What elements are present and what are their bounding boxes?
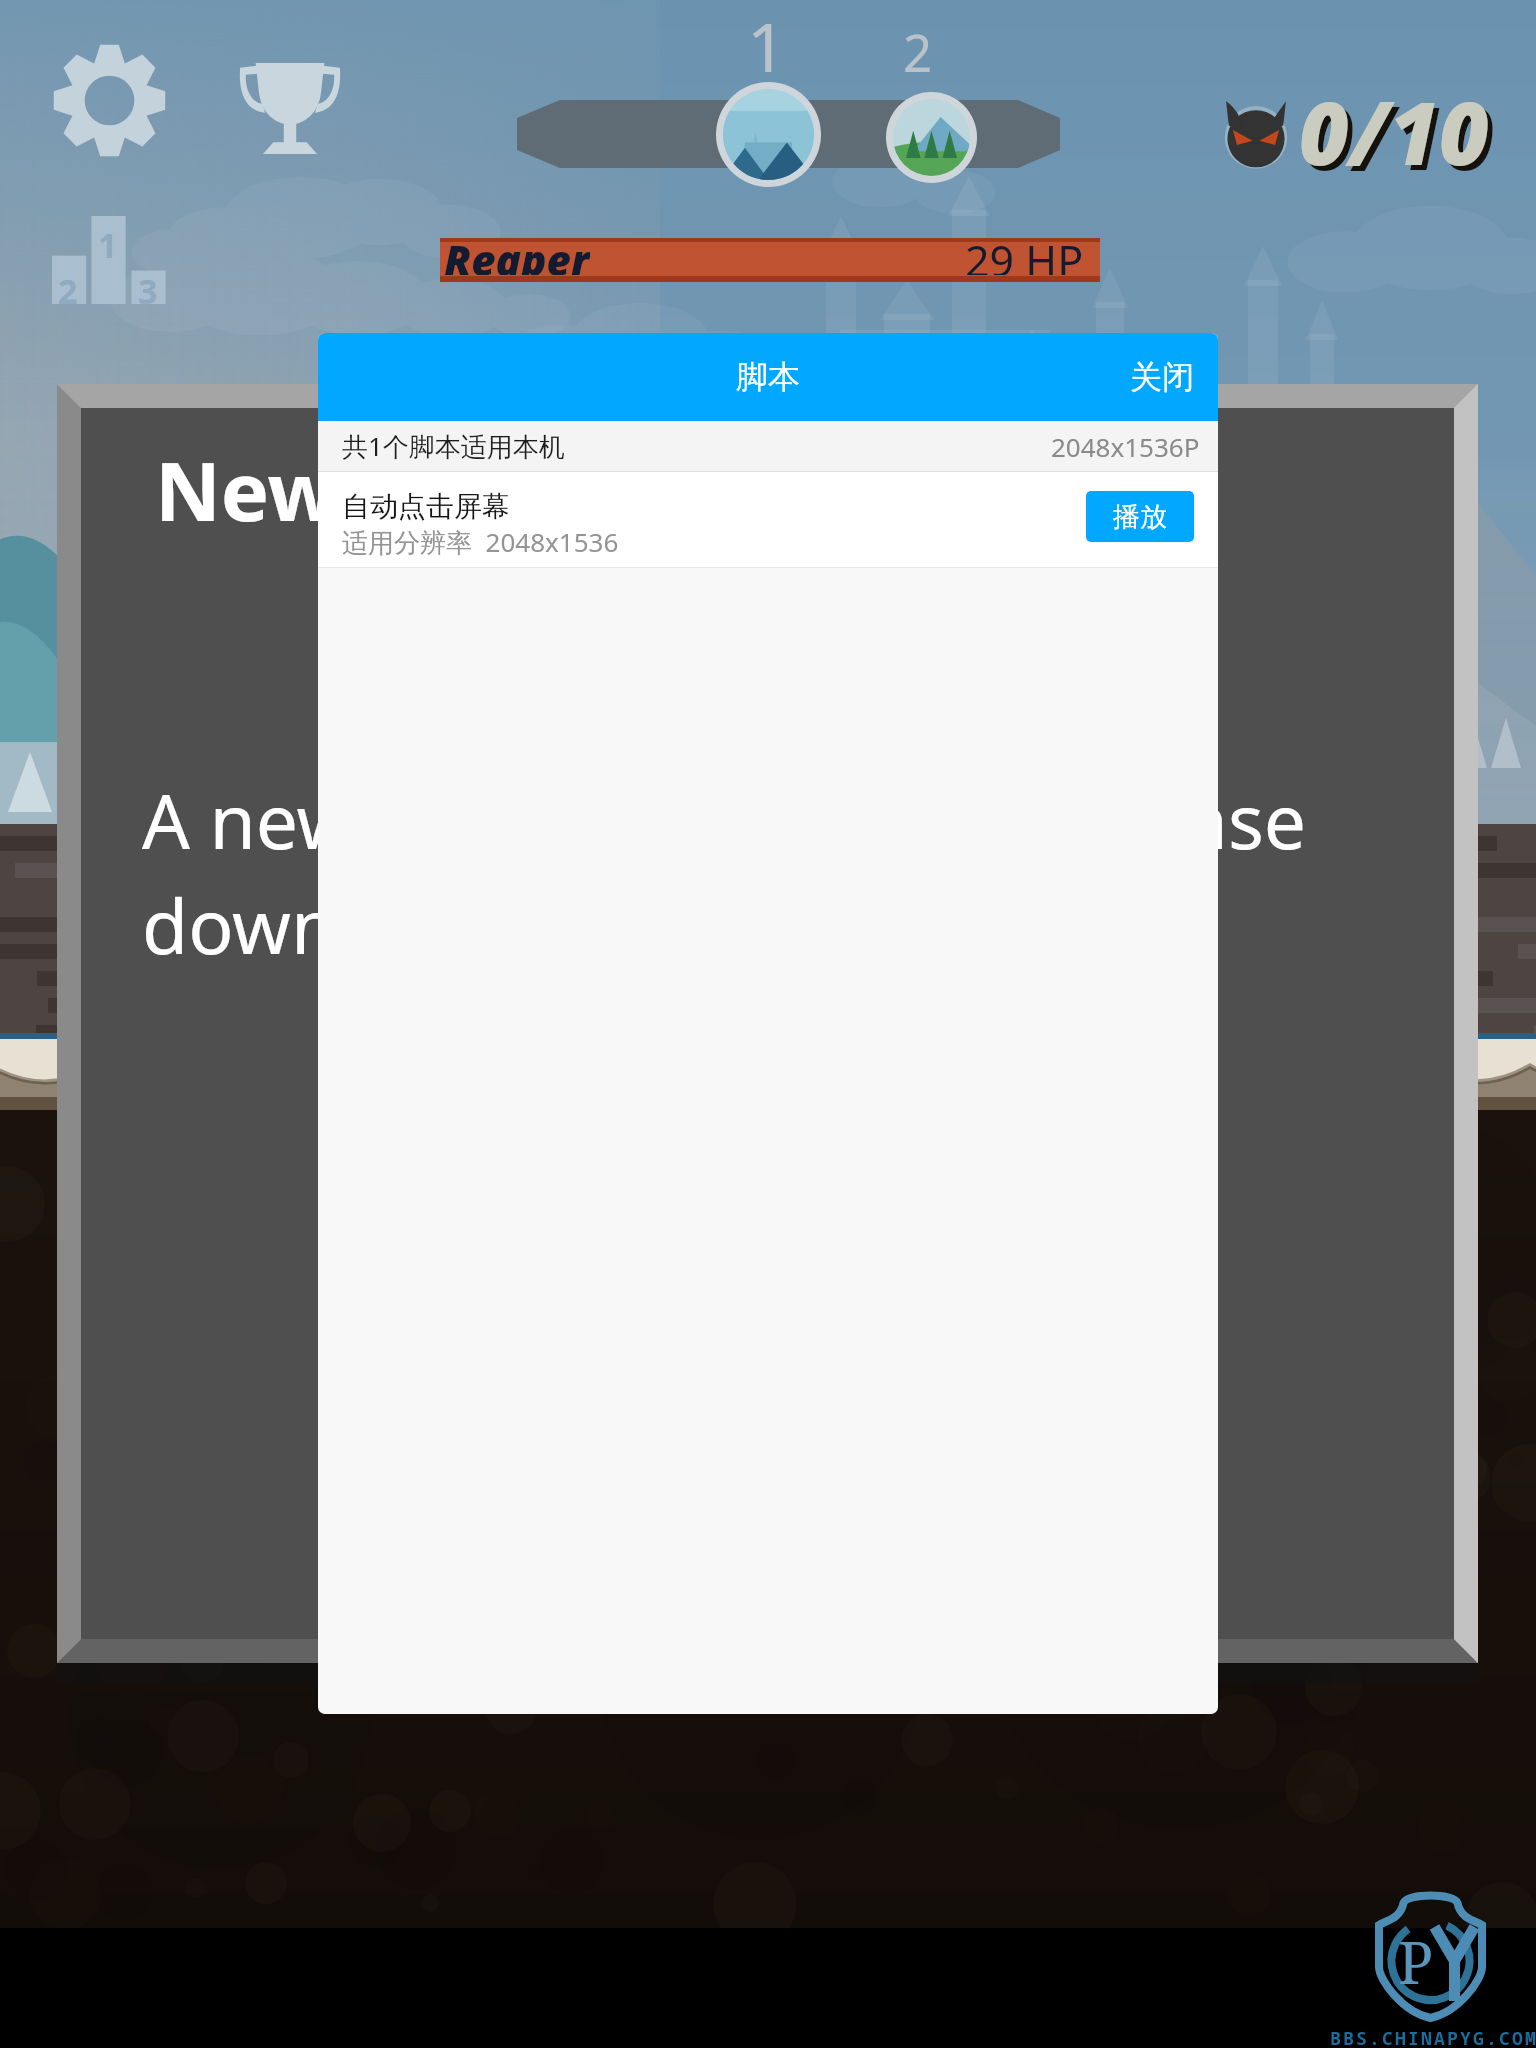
staticText: 2	[58, 268, 78, 314]
staticText: New version	[155, 434, 657, 544]
button[interactable]: Level 1	[716, 24, 821, 187]
staticText: 1	[747, 0, 786, 92]
staticText: A new version is available, please downl…	[142, 769, 1307, 976]
button[interactable]: Leaderboard	[52, 216, 168, 304]
staticText: 0/10	[1299, 73, 1489, 190]
button[interactable]: Level 2	[886, 39, 977, 183]
staticText: 3	[138, 268, 158, 314]
staticText: 1	[98, 222, 118, 268]
staticText: BBS.CHINAPYG.COM	[1330, 2026, 1536, 2048]
button[interactable]: Enemies defeated	[1222, 100, 1290, 168]
button[interactable]: 自动点击屏幕	[318, 472, 1218, 567]
staticText: 脚本	[736, 357, 800, 397]
staticText: Reaper	[444, 231, 590, 275]
staticText: 2048x1536P	[1051, 429, 1200, 464]
button[interactable]: Settings	[53, 44, 166, 157]
staticText: 适用分辨率 2048x1536	[342, 524, 619, 560]
staticText: 29 HP	[965, 231, 1084, 275]
button[interactable]: 关闭	[1114, 343, 1210, 411]
staticText: 2	[903, 17, 933, 86]
staticText: P	[1398, 1922, 1434, 2001]
button[interactable]: 播放	[1086, 491, 1194, 542]
staticText: 共1个脚本适用本机	[342, 428, 565, 464]
staticText: 自动点击屏幕	[342, 489, 510, 524]
staticText: 0/10	[1304, 78, 1494, 195]
staticText: 关闭	[1130, 357, 1194, 397]
button[interactable]: Achievements	[238, 58, 342, 156]
staticText: 播放	[1113, 500, 1167, 534]
